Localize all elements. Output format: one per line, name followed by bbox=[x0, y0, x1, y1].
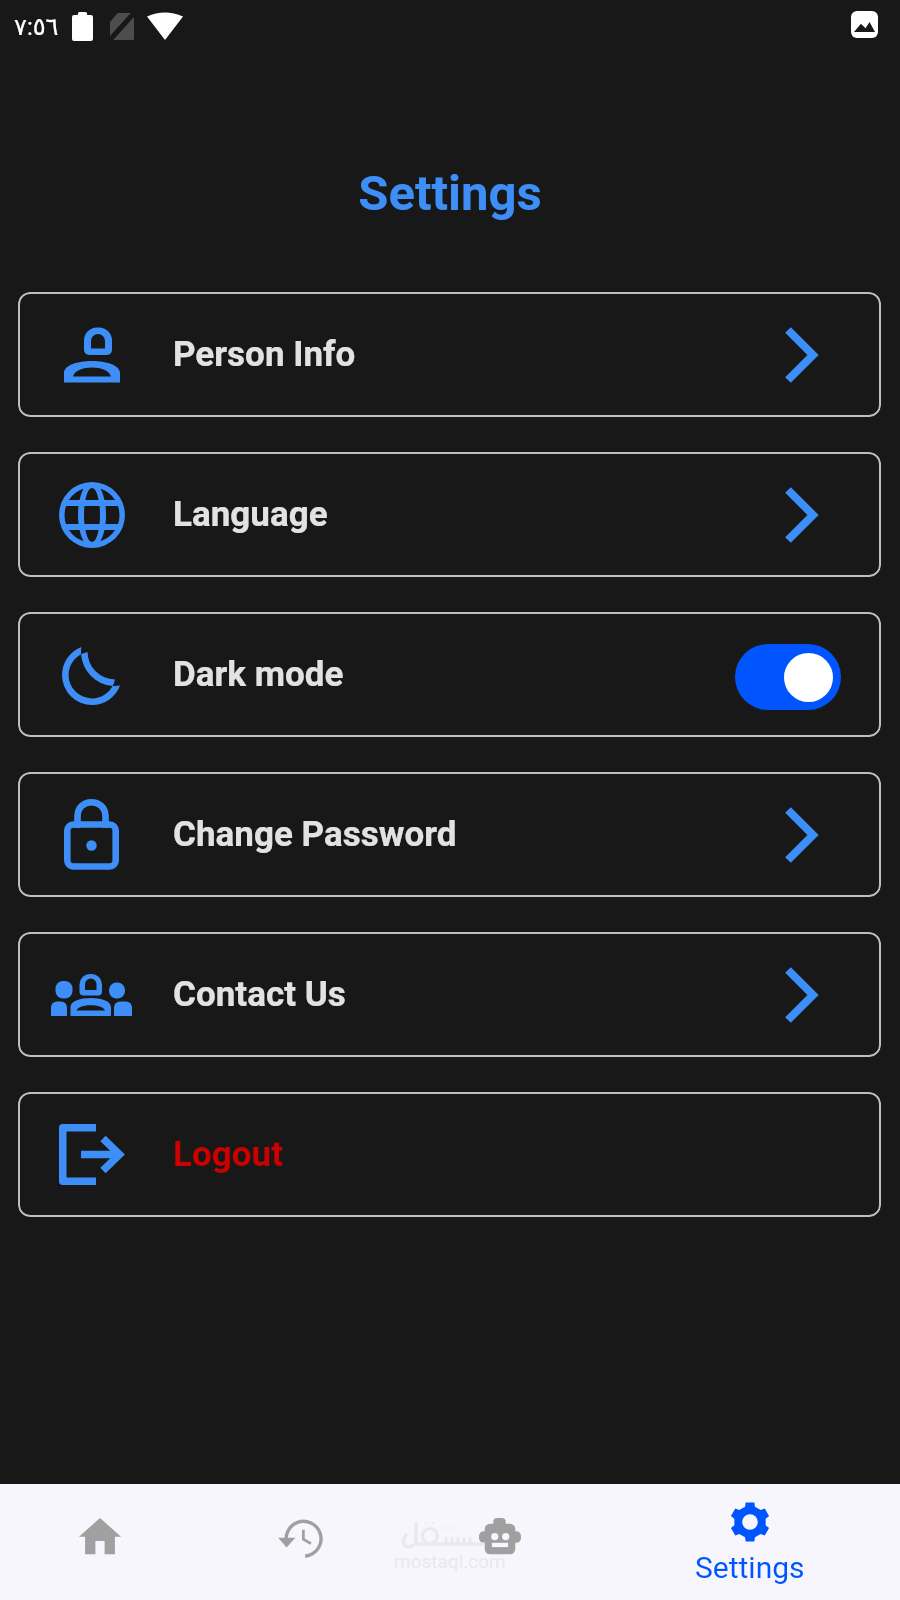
staticText: Settings bbox=[695, 1550, 805, 1585]
staticText: ٧:٥٦ bbox=[14, 13, 59, 41]
button[interactable]: Screenshot bbox=[851, 11, 878, 38]
button[interactable]: Assistant bbox=[400, 1484, 600, 1600]
button[interactable]: Dark mode toggle bbox=[735, 644, 841, 710]
staticText: Contact Us bbox=[173, 974, 346, 1015]
button[interactable]: Language bbox=[18, 452, 881, 577]
staticText: Change Password bbox=[173, 814, 457, 855]
button[interactable]: Settings bbox=[600, 1484, 900, 1600]
staticText: Language bbox=[173, 494, 328, 535]
staticText: Settings bbox=[0, 165, 900, 222]
staticText: Logout bbox=[173, 1134, 283, 1175]
staticText: Dark mode bbox=[173, 654, 344, 695]
button[interactable]: History bbox=[200, 1484, 400, 1600]
button[interactable]: Contact Us bbox=[18, 932, 881, 1057]
button[interactable]: Dark mode bbox=[18, 612, 881, 737]
staticText: Person Info bbox=[173, 334, 356, 375]
button[interactable]: Change Password bbox=[18, 772, 881, 897]
button[interactable]: Person Info bbox=[18, 292, 881, 417]
button[interactable]: Logout bbox=[18, 1092, 881, 1217]
staticText: mostaql.com bbox=[394, 1550, 506, 1572]
button[interactable]: Home bbox=[0, 1484, 200, 1600]
